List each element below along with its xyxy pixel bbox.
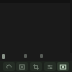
button[interactable]: Undo	[3, 62, 15, 71]
button[interactable]: Adjust	[44, 62, 56, 71]
button[interactable]: Layers	[16, 62, 28, 71]
button[interactable]: Capture	[57, 62, 69, 71]
button[interactable]: Crop	[30, 62, 42, 71]
